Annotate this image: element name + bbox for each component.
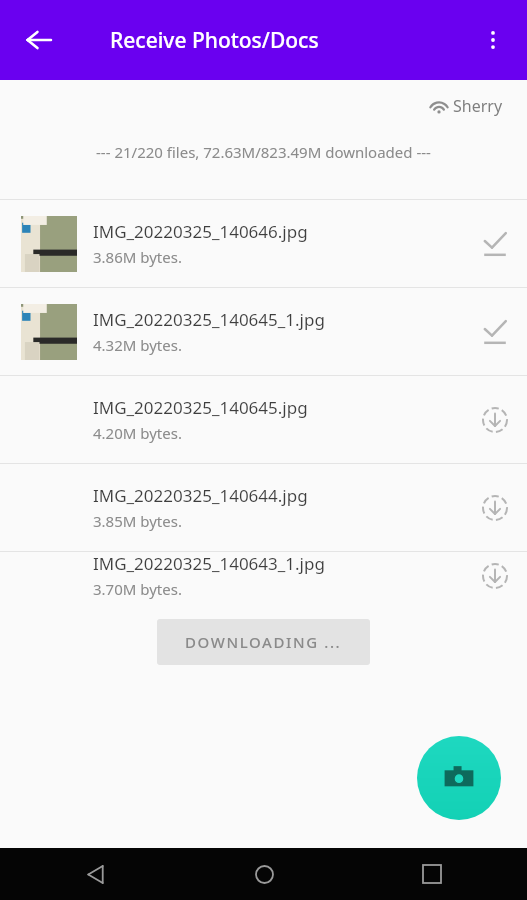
staticText: 3.86M bytes.: [93, 247, 182, 267]
button[interactable]: IMG_20220325_140644.jpg: [0, 464, 527, 551]
button[interactable]: Download: [475, 400, 515, 440]
staticText: Receive Photos/Docs: [110, 26, 319, 55]
button[interactable]: Recent apps: [409, 851, 455, 897]
staticText: IMG_20220325_140644.jpg: [93, 484, 308, 507]
button[interactable]: IMG_20220325_140645_1.jpg: [0, 288, 527, 375]
button[interactable]: More options: [467, 14, 519, 66]
staticText: 4.20M bytes.: [93, 423, 182, 443]
staticText: DOWNLOADING ...: [185, 632, 342, 652]
staticText: IMG_20220325_140645.jpg: [93, 396, 308, 419]
staticText: IMG_20220325_140646.jpg: [93, 220, 308, 243]
button[interactable]: Downloaded: [475, 312, 515, 352]
button[interactable]: Download: [475, 488, 515, 528]
button[interactable]: DOWNLOADING ...: [157, 619, 370, 665]
button[interactable]: Back: [12, 13, 66, 67]
staticText: 3.85M bytes.: [93, 511, 182, 531]
button[interactable]: Take photo: [417, 736, 501, 820]
button[interactable]: IMG_20220325_140646.jpg: [0, 200, 527, 287]
button[interactable]: IMG_20220325_140643_1.jpg: [0, 552, 527, 599]
button[interactable]: Downloaded: [475, 224, 515, 264]
button[interactable]: Back: [72, 851, 118, 897]
staticText: 4.32M bytes.: [93, 335, 182, 355]
staticText: 3.70M bytes.: [93, 579, 182, 599]
staticText: Sherry: [453, 95, 503, 117]
staticText: IMG_20220325_140645_1.jpg: [93, 308, 325, 331]
staticText: --- 21/220 files, 72.63M/823.49M downloa…: [96, 142, 431, 162]
button[interactable]: Home: [241, 851, 287, 897]
button[interactable]: IMG_20220325_140645.jpg: [0, 376, 527, 463]
staticText: IMG_20220325_140643_1.jpg: [93, 552, 325, 575]
